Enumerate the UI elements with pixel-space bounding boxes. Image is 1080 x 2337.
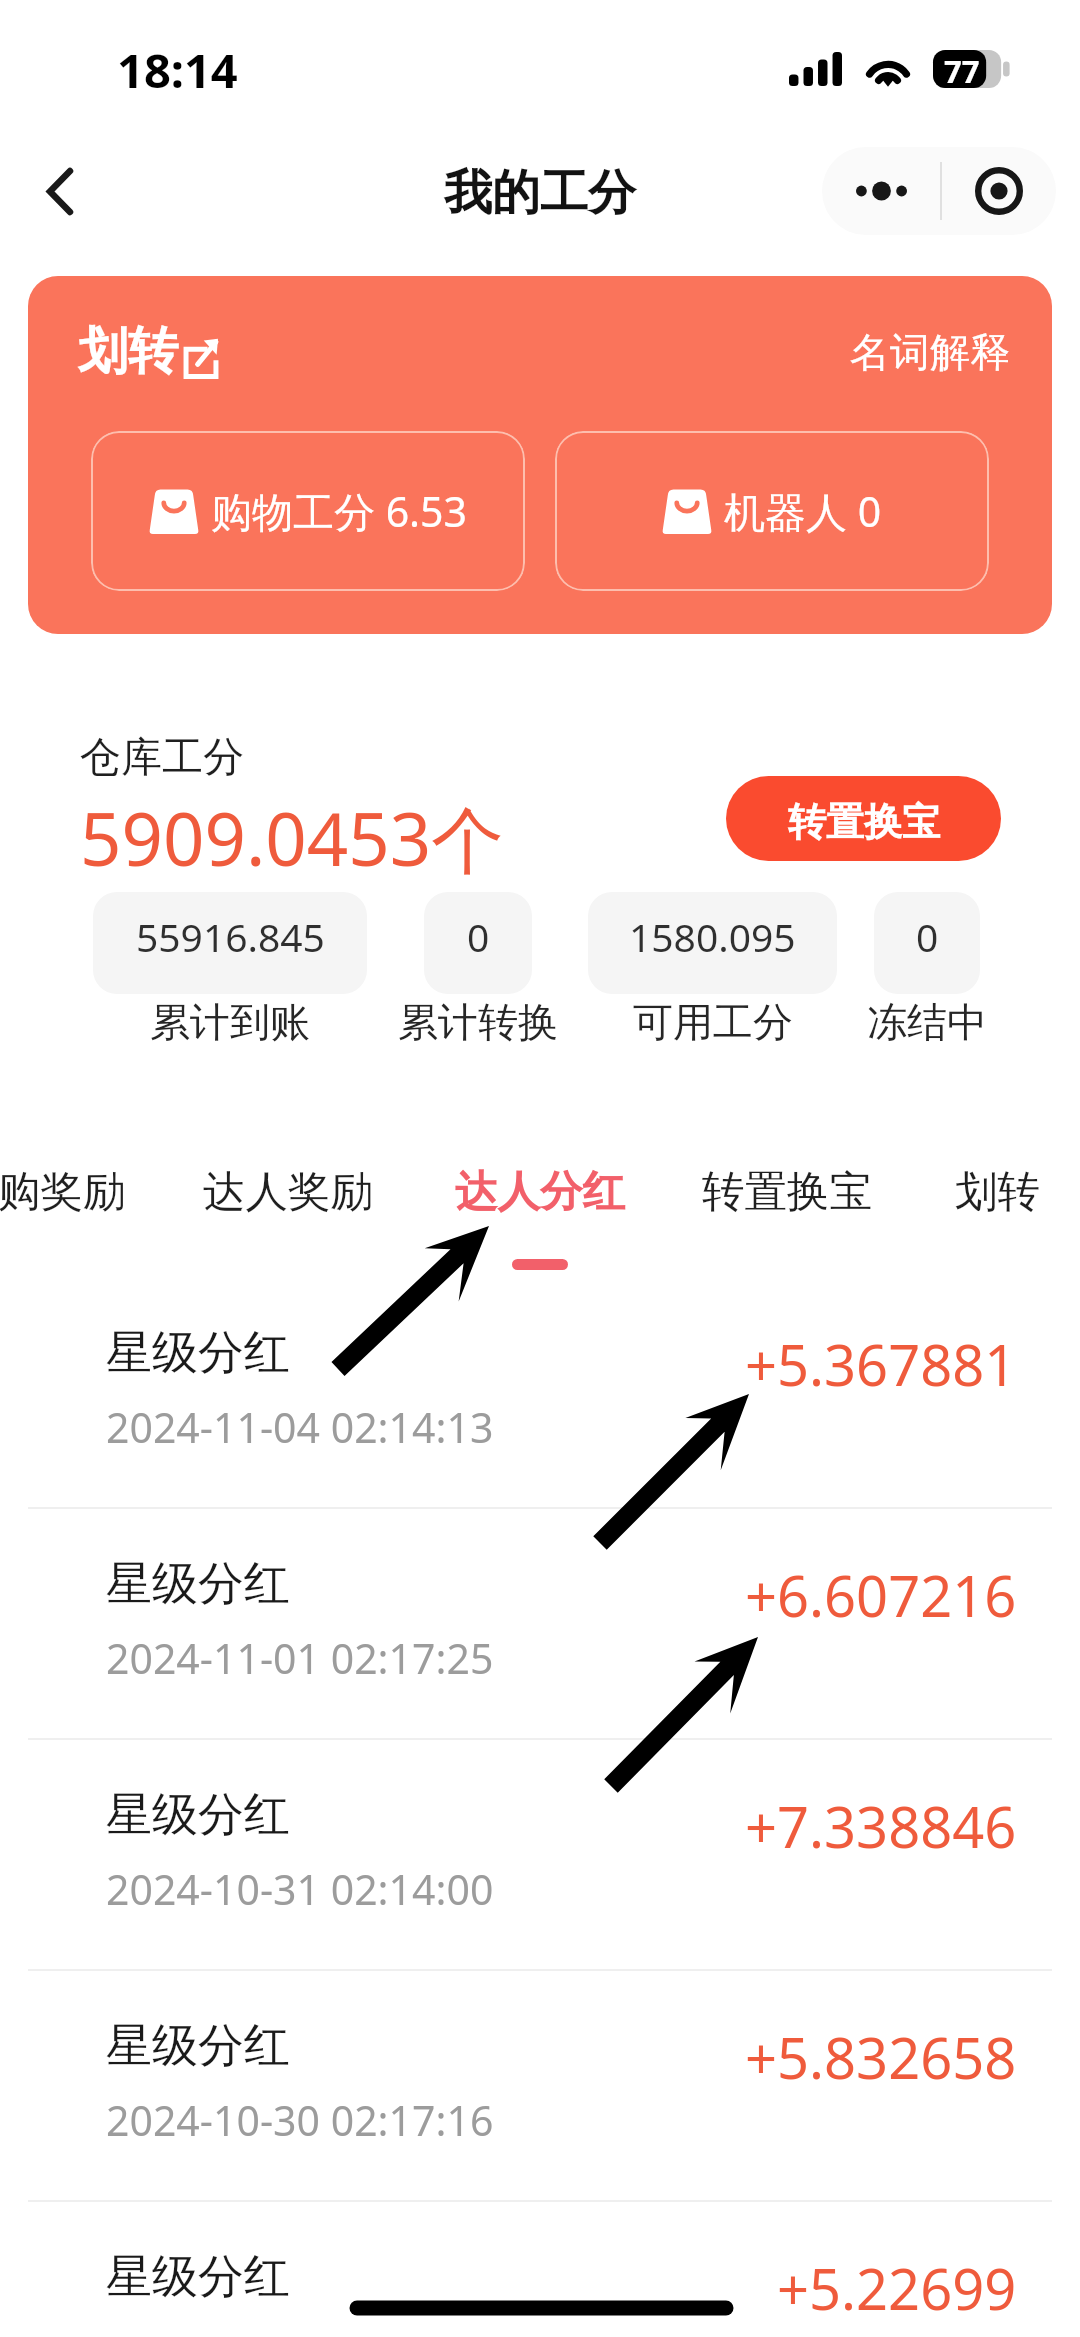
button[interactable]: More options [822,147,940,235]
staticText: 机器人 0 [724,483,882,539]
button[interactable]: 星级分红 [0,1740,1080,1969]
staticText: 购物工分 6.53 [211,483,468,539]
staticText: 划转 [955,1165,1040,1219]
staticText: 达人分红 [455,1165,625,1219]
staticText: 1580.095 [629,910,796,963]
staticText: 星级分红 [106,2017,290,2075]
button[interactable]: Back [20,151,100,231]
staticText: +6.607216 [745,1557,1017,1633]
staticText: 达人奖励 [203,1165,373,1219]
staticText: 0 [916,910,939,963]
staticText: 划转 [78,320,178,383]
staticText: +5.22699 [777,2250,1017,2326]
staticText: 可用工分 [633,997,793,1047]
staticText: 2024-10-31 02:14:00 [106,1861,494,1917]
button[interactable]: 划转 [28,276,1052,634]
staticText: 购奖励 [0,1165,126,1219]
button[interactable]: Close mini program [942,147,1056,235]
button[interactable]: 转置换宝 [627,1153,947,1278]
button[interactable]: 达人奖励 [128,1153,448,1278]
staticText: +5.367881 [745,1326,1017,1402]
staticText: 仓库工分 [80,732,244,784]
staticText: 0 [467,910,490,963]
staticText: 转置换宝 [702,1165,872,1219]
button[interactable]: 星级分红 [0,1509,1080,1738]
staticText: 累计到账 [150,997,310,1047]
staticText: 55916.845 [136,910,325,963]
staticText: 2024-10-30 02:17:16 [106,2092,494,2148]
staticText: 星级分红 [106,2248,290,2306]
staticText: 18:14 [117,38,238,102]
button[interactable]: 转置换宝 [726,776,1001,861]
staticText: 2024-11-04 02:14:13 [106,1399,494,1455]
staticText: 星级分红 [106,1786,290,1844]
button[interactable]: 达人分红 [380,1153,700,1278]
staticText: 星级分红 [106,1324,290,1382]
button[interactable]: 机器人 0 [555,431,989,591]
staticText: +5.832658 [745,2019,1017,2095]
staticText: 转置换宝 [788,798,940,846]
staticText: 我的工分 [444,163,636,223]
staticText: +7.338846 [745,1788,1017,1864]
button[interactable]: 购物工分 6.53 [91,431,525,591]
button[interactable]: 星级分红 [0,2202,1080,2337]
staticText: 累计转换 [398,997,558,1047]
button[interactable]: 星级分红 [0,1971,1080,2200]
staticText: 77 [944,50,980,88]
staticText: 冻结中 [867,997,987,1047]
button[interactable]: 划转 [837,1153,1080,1278]
button[interactable]: 购奖励 [0,1153,222,1278]
staticText: 星级分红 [106,1555,290,1613]
staticText: 2024-11-01 02:17:25 [106,1630,494,1686]
button[interactable]: 星级分红 [0,1278,1080,1507]
staticText: 5909.0453个 [80,788,504,887]
button[interactable]: 名词解释 [850,327,1010,377]
